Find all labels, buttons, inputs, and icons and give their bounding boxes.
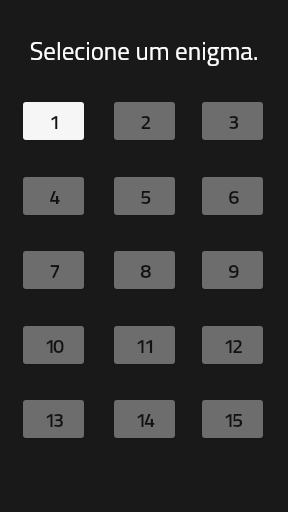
button[interactable]: 3 <box>202 102 263 140</box>
staticText: 7 <box>49 255 58 285</box>
staticText: 9 <box>228 255 237 285</box>
button[interactable]: 11 <box>114 326 175 364</box>
button[interactable]: 8 <box>114 251 175 289</box>
staticText: 15 <box>223 404 241 434</box>
staticText: 1 <box>49 106 58 136</box>
button[interactable]: 6 <box>202 177 263 215</box>
staticText: 14 <box>135 404 153 434</box>
button[interactable]: 10 <box>23 326 84 364</box>
staticText: 11 <box>135 330 153 360</box>
button[interactable]: 13 <box>23 400 84 438</box>
button[interactable]: 1 <box>23 102 84 140</box>
button[interactable]: 5 <box>114 177 175 215</box>
staticText: 3 <box>228 106 237 136</box>
staticText: 12 <box>223 330 241 360</box>
button[interactable]: 14 <box>114 400 175 438</box>
button[interactable]: 15 <box>202 400 263 438</box>
button[interactable]: 7 <box>23 251 84 289</box>
button[interactable]: 4 <box>23 177 84 215</box>
staticText: 8 <box>140 255 149 285</box>
staticText: 4 <box>49 181 58 211</box>
staticText: 13 <box>44 404 62 434</box>
staticText: 10 <box>44 330 62 360</box>
button[interactable]: 12 <box>202 326 263 364</box>
staticText: 2 <box>140 106 149 136</box>
staticText: Selecione um enigma. <box>0 32 288 70</box>
staticText: 5 <box>140 181 149 211</box>
button[interactable]: 2 <box>114 102 175 140</box>
staticText: 6 <box>228 181 237 211</box>
button[interactable]: 9 <box>202 251 263 289</box>
